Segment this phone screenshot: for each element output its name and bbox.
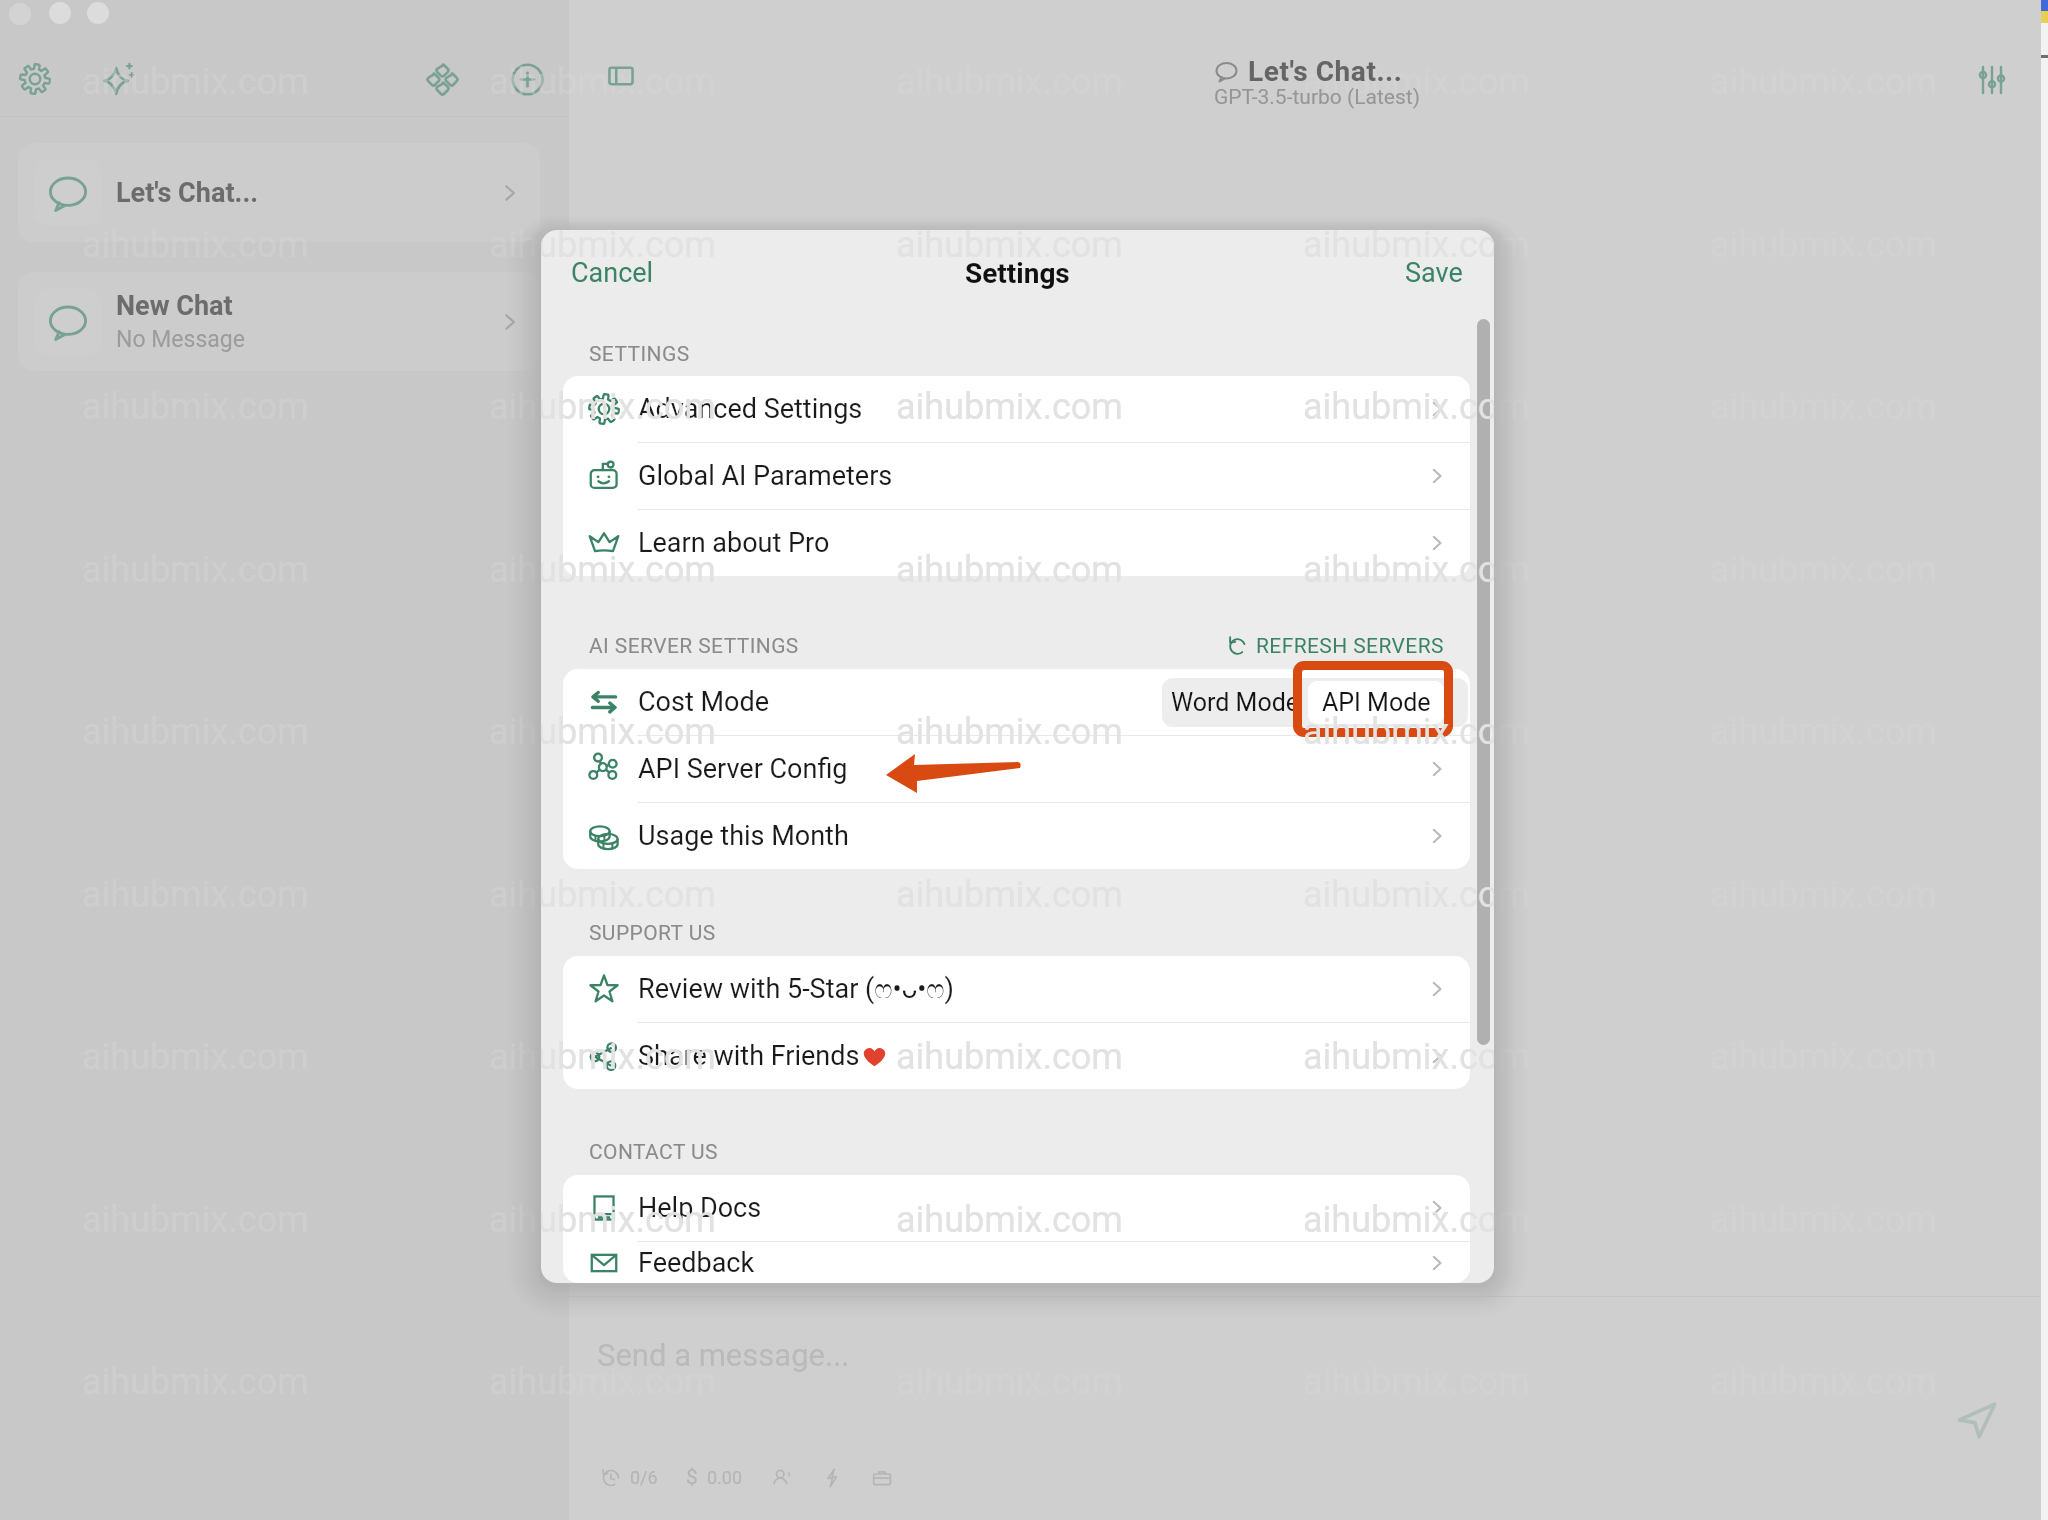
button[interactable]: New magic chat xyxy=(99,60,137,98)
button[interactable]: Review with 5-Star (ෆ•ᴗ•ෆ) xyxy=(563,956,1470,1022)
button[interactable]: API Mode xyxy=(1308,681,1444,724)
staticText: CONTACT US xyxy=(589,1140,718,1165)
staticText: aihubmix.com xyxy=(489,1361,716,1403)
button[interactable]: Settings xyxy=(18,62,52,96)
button[interactable]: Tools xyxy=(871,1467,893,1489)
button[interactable]: Help Docs xyxy=(563,1175,1470,1241)
staticText: aihubmix.com xyxy=(896,386,1123,428)
button[interactable]: Learn about Pro xyxy=(563,510,1470,576)
staticText: Learn about Pro xyxy=(638,527,830,559)
staticText: aihubmix.com xyxy=(896,1036,1123,1078)
staticText: Help Docs xyxy=(638,1192,762,1224)
staticText: 0.00 xyxy=(707,1467,743,1488)
staticText: Word Mode xyxy=(1171,688,1300,717)
staticText: Let's Chat... xyxy=(1248,55,1403,88)
staticText: Usage this Month xyxy=(638,820,849,852)
staticText: aihubmix.com xyxy=(1303,224,1530,266)
staticText: Save xyxy=(1405,257,1463,289)
staticText: aihubmix.com xyxy=(1303,711,1530,753)
button[interactable]: API Server Config xyxy=(563,736,1470,802)
button[interactable]: Quick actions xyxy=(821,1467,843,1489)
button[interactable]: Voice xyxy=(771,1467,793,1489)
staticText: aihubmix.com xyxy=(896,549,1123,591)
staticText: aihubmix.com xyxy=(896,230,1123,266)
button[interactable]: Cancel xyxy=(559,249,666,297)
button[interactable]: Usage this Month xyxy=(563,803,1470,869)
staticText: Feedback xyxy=(638,1247,755,1279)
staticText: aihubmix.com xyxy=(489,549,716,591)
staticText: aihubmix.com xyxy=(896,711,1123,753)
staticText: aihubmix.com xyxy=(1303,61,1530,103)
button[interactable]: Advanced Settings xyxy=(563,376,1470,442)
staticText: aihubmix.com xyxy=(896,549,1123,591)
staticText: aihubmix.com xyxy=(1303,549,1494,591)
staticText: aihubmix.com xyxy=(896,386,1123,428)
button[interactable]: Global AI Parameters xyxy=(563,443,1470,509)
staticText: API Server Config xyxy=(638,753,848,785)
staticText: API Mode xyxy=(1322,688,1431,717)
staticText: aihubmix.com xyxy=(1303,230,1494,266)
button[interactable]: Send message xyxy=(1955,1398,1999,1442)
staticText: aihubmix.com xyxy=(489,874,716,916)
staticText: Share with Friends xyxy=(638,1040,860,1072)
staticText: aihubmix.com xyxy=(1303,386,1494,428)
button[interactable]: REFRESH SERVERS xyxy=(1224,634,1446,659)
staticText: New Chat xyxy=(116,290,233,322)
staticText: aihubmix.com xyxy=(1303,1199,1530,1241)
staticText: aihubmix.com xyxy=(1303,1199,1494,1241)
staticText: aihubmix.com xyxy=(1303,1036,1530,1078)
staticText: Review with 5-Star (ෆ•ᴗ•ෆ) xyxy=(638,973,954,1005)
button[interactable]: Apps xyxy=(424,61,461,98)
button[interactable]: Let's Chat... xyxy=(18,143,540,242)
button[interactable]: Save xyxy=(1393,249,1475,297)
staticText: aihubmix.com xyxy=(541,1036,716,1078)
staticText: Let's Chat... xyxy=(116,177,259,209)
staticText: aihubmix.com xyxy=(489,61,716,103)
staticText: Cost Mode xyxy=(638,686,769,718)
staticText: aihubmix.com xyxy=(1303,711,1494,753)
button[interactable]: Toggle sidebar xyxy=(604,59,638,93)
staticText: aihubmix.com xyxy=(896,711,1123,753)
staticText: aihubmix.com xyxy=(896,1199,1123,1241)
staticText: aihubmix.com xyxy=(541,874,716,916)
staticText: aihubmix.com xyxy=(896,874,1123,916)
button[interactable]: Chat settings xyxy=(1974,62,2010,98)
staticText: Global AI Parameters xyxy=(638,460,893,492)
staticText: Advanced Settings xyxy=(638,393,863,425)
staticText: aihubmix.com xyxy=(541,386,716,428)
staticText: GPT-3.5-turbo (Latest) xyxy=(1214,85,1420,110)
staticText: aihubmix.com xyxy=(896,874,1123,916)
staticText: Send a message... xyxy=(597,1337,850,1373)
staticText: aihubmix.com xyxy=(1303,874,1530,916)
button[interactable]: Cost Mode xyxy=(563,669,1470,735)
staticText: aihubmix.com xyxy=(541,230,716,266)
button[interactable]: Feedback xyxy=(563,1242,1470,1283)
staticText: REFRESH SERVERS xyxy=(1256,634,1444,659)
staticText: aihubmix.com xyxy=(489,386,716,428)
staticText: $ xyxy=(686,1465,698,1490)
button[interactable]: New chat xyxy=(509,61,546,98)
staticText: aihubmix.com xyxy=(896,224,1123,266)
staticText: aihubmix.com xyxy=(896,1199,1123,1241)
button[interactable]: New Chat xyxy=(18,272,540,371)
staticText: aihubmix.com xyxy=(896,1036,1123,1078)
button[interactable]: Share with Friends xyxy=(563,1023,1470,1089)
button[interactable]: Word Mode xyxy=(1162,678,1308,727)
staticText: aihubmix.com xyxy=(541,1199,716,1241)
staticText: aihubmix.com xyxy=(541,549,716,591)
